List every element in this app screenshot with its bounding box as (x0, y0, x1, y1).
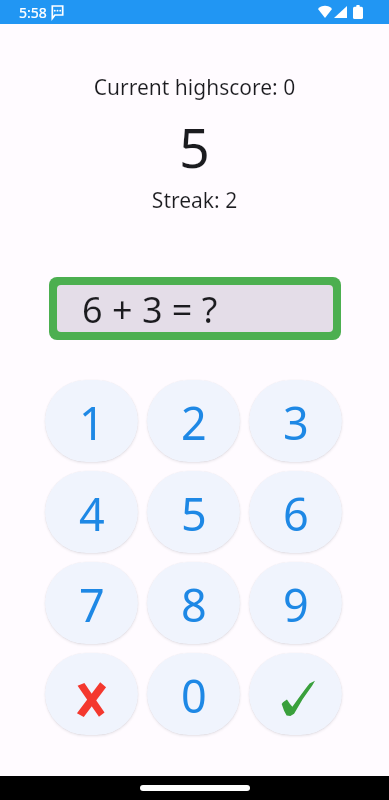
other: Submit (281, 680, 315, 716)
staticText: 7 (79, 574, 105, 635)
button[interactable]: 7 (45, 562, 138, 644)
staticText: 9 (283, 574, 309, 635)
button[interactable]: 8 (147, 562, 240, 644)
button[interactable]: Clear (45, 653, 138, 735)
button[interactable]: 4 (45, 471, 138, 553)
button[interactable]: 6 (249, 471, 342, 553)
staticText: 3 (283, 392, 309, 453)
button[interactable]: 2 (147, 380, 240, 462)
button[interactable]: 1 (45, 380, 138, 462)
staticText: 1 (79, 392, 105, 453)
button[interactable]: 5 (147, 471, 240, 553)
staticText: 8 (181, 574, 207, 635)
button[interactable]: Submit (249, 653, 342, 735)
staticText: Streak: 2 (0, 186, 389, 215)
staticText: 5:58 (19, 3, 47, 22)
staticText: 2 (181, 392, 207, 453)
staticText: 6 (283, 483, 309, 544)
button[interactable]: 0 (147, 653, 240, 735)
staticText: 5 (0, 110, 389, 184)
staticText: 4 (79, 483, 105, 544)
staticText: 5 (181, 483, 207, 544)
button[interactable]: 9 (249, 562, 342, 644)
staticText: 6 + 3 = ? (82, 285, 218, 332)
button[interactable]: 3 (249, 380, 342, 462)
staticText: Current highscore: 0 (0, 73, 389, 102)
staticText: 0 (181, 665, 207, 726)
other: Clear (76, 682, 107, 717)
